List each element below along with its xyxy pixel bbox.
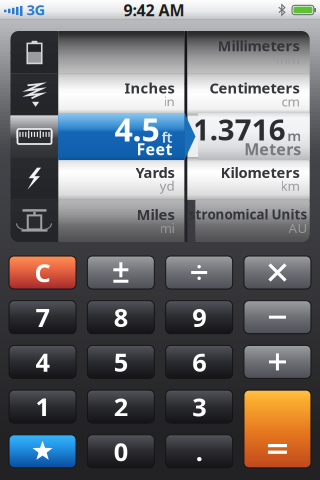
staticText: yd [159, 177, 174, 194]
staticText: Millimeters [217, 36, 299, 55]
staticText: 1.3716 [193, 109, 286, 148]
button[interactable]: Flow [10, 73, 58, 115]
button[interactable] [9, 435, 76, 468]
button[interactable]: Millimeters [187, 31, 309, 73]
button[interactable]: Astronomical Units [187, 200, 309, 242]
button[interactable]: 4 [9, 345, 76, 378]
button[interactable]: Power [10, 158, 58, 200]
staticText: 3G [26, 0, 45, 19]
button[interactable] [58, 31, 184, 73]
staticText: 2 [114, 390, 128, 423]
button[interactable]: . [166, 435, 233, 468]
button[interactable]: C [9, 256, 76, 289]
staticText: Kilometers [220, 162, 299, 182]
button[interactable]: Kilometers [187, 158, 309, 200]
staticText: C [35, 256, 51, 289]
staticText: 1 [35, 390, 49, 423]
staticText: mm [275, 50, 299, 68]
staticText: 5 [114, 345, 128, 379]
staticText: Miles [136, 205, 174, 224]
staticText: Astronomical Units [179, 205, 307, 223]
staticText: 7 [36, 300, 50, 334]
staticText: ft [161, 127, 172, 147]
staticText: Centimeters [209, 78, 299, 98]
staticText: in [163, 92, 174, 110]
staticText: cm [281, 92, 299, 110]
button[interactable]: 3 [166, 390, 233, 423]
staticText: AU [288, 219, 307, 237]
button[interactable] [87, 256, 154, 289]
staticText: 8 [114, 300, 128, 334]
button[interactable]: 1 [9, 390, 76, 423]
button[interactable]: Centimeters [187, 73, 309, 115]
button[interactable] [244, 301, 311, 334]
button[interactable] [166, 256, 233, 289]
staticText: 4.5 [114, 108, 159, 150]
button[interactable]: Yards [58, 158, 184, 200]
button[interactable]: 6 [166, 345, 233, 378]
button[interactable]: 2 [87, 390, 154, 423]
button[interactable]: 7 [9, 301, 76, 334]
staticText: 3 [192, 390, 206, 423]
staticText: Feet [136, 138, 172, 160]
button[interactable]: Equals [244, 390, 311, 468]
button[interactable]: 8 [87, 301, 154, 334]
staticText: 9 [192, 300, 206, 334]
staticText: 9:42 AM [124, 0, 185, 21]
button[interactable]: Pressure [10, 200, 58, 242]
staticText: km [280, 177, 299, 194]
staticText: 0 [114, 434, 128, 468]
staticText: 6 [192, 345, 206, 379]
staticText: 4 [36, 345, 50, 379]
button[interactable] [244, 256, 311, 289]
button[interactable]: 0 [87, 435, 154, 468]
staticText: Yards [135, 162, 174, 182]
button[interactable] [244, 345, 311, 378]
staticText: mi [159, 219, 174, 237]
button[interactable]: 9 [166, 301, 233, 334]
staticText: . [196, 434, 203, 468]
staticText: m [287, 126, 301, 145]
staticText: Inches [124, 78, 174, 98]
staticText: Meters [244, 138, 301, 160]
button[interactable]: Inches [58, 73, 184, 115]
button[interactable]: Energy [10, 31, 58, 73]
button[interactable]: 5 [87, 345, 154, 378]
button[interactable]: Length [10, 115, 58, 158]
button[interactable]: Miles [58, 200, 184, 242]
